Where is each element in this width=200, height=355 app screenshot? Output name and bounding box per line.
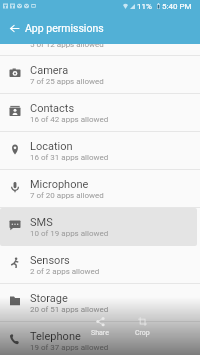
button[interactable]: Sensors bbox=[0, 246, 200, 284]
staticText: Camera bbox=[30, 64, 69, 77]
staticText: 5:40 PM bbox=[162, 2, 192, 11]
staticText: 2 of 2 apps allowed bbox=[30, 267, 100, 276]
staticText: 11% bbox=[137, 2, 152, 11]
staticText: Storage bbox=[30, 292, 68, 305]
staticText: Location bbox=[30, 140, 73, 153]
staticText: 5 of 12 apps allowed bbox=[30, 40, 104, 49]
staticText: Share bbox=[91, 329, 109, 337]
staticText: Microphone bbox=[30, 178, 89, 191]
staticText: 16 of 31 apps allowed bbox=[30, 153, 109, 162]
button[interactable]: SMS bbox=[0, 208, 200, 246]
staticText: 7 of 25 apps allowed bbox=[30, 77, 104, 86]
staticText: SMS bbox=[30, 216, 53, 229]
button[interactable]: Microphone bbox=[0, 170, 200, 208]
button[interactable]: Storage bbox=[0, 284, 200, 322]
staticText: Sensors bbox=[30, 254, 70, 267]
staticText: 7 of 20 apps allowed bbox=[30, 191, 104, 200]
button[interactable]: Contacts bbox=[0, 94, 200, 132]
staticText: Telephone bbox=[30, 330, 81, 343]
button[interactable]: Share bbox=[80, 317, 120, 337]
button[interactable]: Camera bbox=[0, 56, 200, 94]
staticText: Contacts bbox=[30, 102, 75, 115]
staticText: App permissions bbox=[25, 22, 104, 34]
staticText: 20 of 51 apps allowed bbox=[30, 305, 109, 314]
staticText: 16 of 42 apps allowed bbox=[30, 115, 109, 124]
staticText: Crop bbox=[135, 329, 150, 337]
button[interactable]: Telephone bbox=[0, 322, 200, 355]
staticText: 10 of 19 apps allowed bbox=[30, 229, 109, 238]
button[interactable]: Back bbox=[5, 19, 23, 37]
staticText: 19 of 37 apps allowed bbox=[30, 343, 109, 352]
button[interactable]: Location bbox=[0, 132, 200, 170]
button[interactable]: Crop bbox=[122, 317, 162, 337]
